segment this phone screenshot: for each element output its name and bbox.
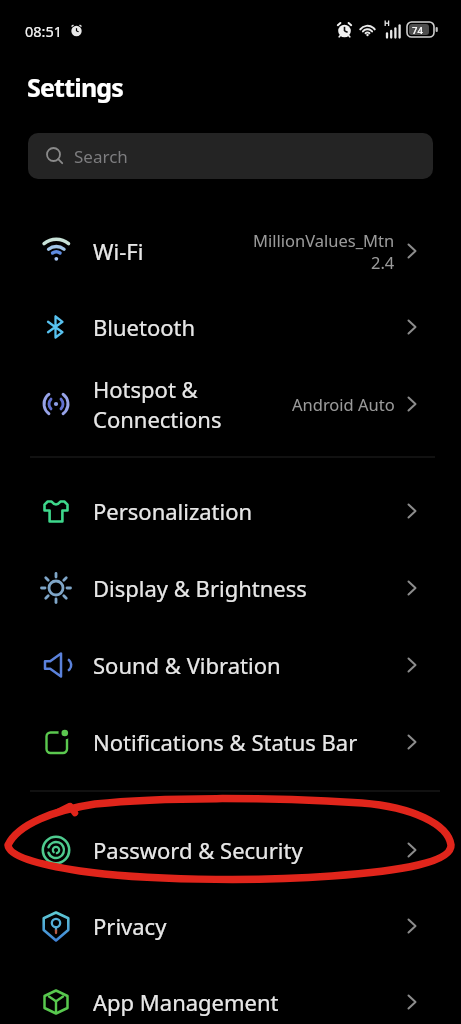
staticText: Notifications & Status Bar	[93, 727, 358, 757]
staticText: Privacy	[93, 911, 167, 941]
button[interactable]: Sound & Vibration	[0, 627, 461, 703]
button[interactable]: App Management	[0, 964, 461, 1024]
button[interactable]: Hotspot &	[0, 366, 461, 442]
button[interactable]: Password & Security	[0, 812, 461, 888]
staticText: Hotspot &	[93, 374, 198, 404]
staticText: Connections	[93, 404, 222, 434]
staticText: 74	[412, 24, 423, 37]
staticText: Personalization	[93, 496, 253, 526]
staticText: Settings	[27, 70, 124, 104]
button[interactable]: Wi-Fi	[0, 213, 461, 289]
staticText: Password & Security	[93, 835, 303, 865]
staticText: MillionValues_Mtn	[253, 229, 395, 251]
staticText: Bluetooth	[93, 312, 196, 342]
staticText: 2.4	[371, 251, 395, 273]
staticText: Search	[74, 145, 128, 168]
staticText: Android Auto	[292, 393, 395, 415]
button[interactable]: Personalization	[0, 473, 461, 549]
button[interactable]: Notifications & Status Bar	[0, 704, 461, 780]
button[interactable]: Privacy	[0, 888, 461, 964]
button[interactable]: Search	[28, 133, 433, 179]
button[interactable]: Display & Brightness	[0, 550, 461, 626]
staticText: Sound & Vibration	[93, 650, 281, 680]
staticText: App Management	[93, 987, 279, 1017]
staticText: 08:51	[25, 21, 63, 41]
button[interactable]: Bluetooth	[0, 289, 461, 365]
staticText: Display & Brightness	[93, 573, 307, 603]
staticText: Wi-Fi	[93, 236, 144, 266]
